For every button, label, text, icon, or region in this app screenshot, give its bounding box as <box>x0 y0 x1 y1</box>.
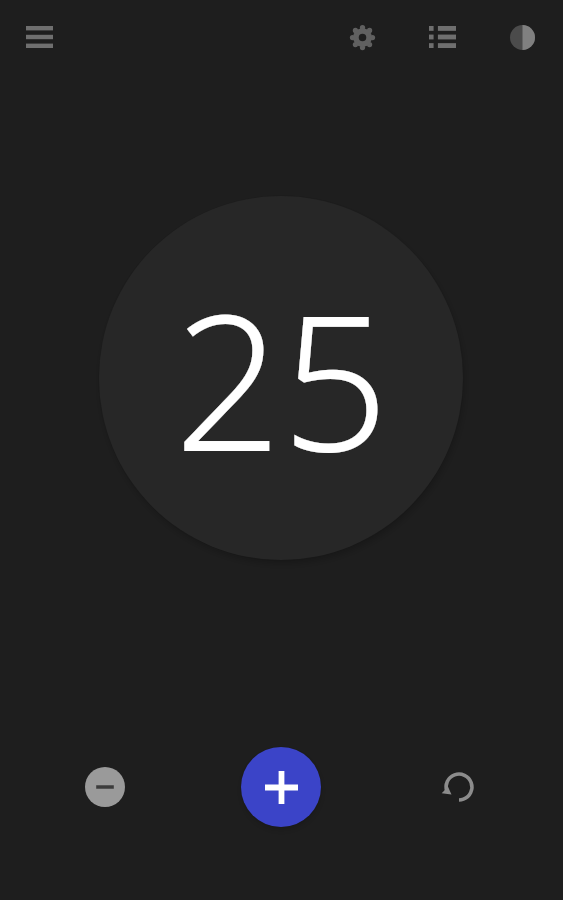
button[interactable]: Open navigation menu <box>15 13 63 61</box>
button[interactable]: 25 <box>99 196 463 560</box>
button[interactable]: Increment <box>241 747 321 827</box>
staticText: 25 <box>174 250 389 506</box>
button[interactable]: Counter list <box>418 13 466 61</box>
button[interactable]: Toggle theme <box>498 13 546 61</box>
button[interactable]: Reset counter <box>435 763 483 811</box>
button[interactable]: Settings <box>338 13 386 61</box>
button[interactable]: Decrement <box>81 763 129 811</box>
